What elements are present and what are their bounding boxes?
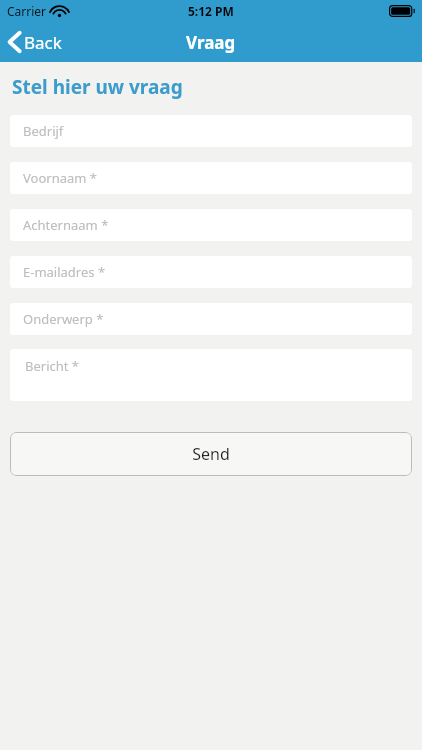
button[interactable]: Send xyxy=(10,432,412,476)
button[interactable]: Achternaam * xyxy=(10,209,412,241)
staticText: Onderwerp * xyxy=(23,310,104,328)
button[interactable]: Bericht * xyxy=(10,349,412,401)
staticText: Voornaam * xyxy=(23,169,97,187)
button[interactable]: Voornaam * xyxy=(10,162,412,194)
other: Back xyxy=(8,31,21,53)
other: Battery full xyxy=(389,5,415,17)
staticText: E-mailadres * xyxy=(23,263,106,281)
staticText: Vraag xyxy=(186,31,236,54)
staticText: Bedrijf xyxy=(23,122,64,140)
button[interactable]: Bedrijf xyxy=(10,115,412,147)
staticText: Back xyxy=(24,31,62,54)
staticText: Achternaam * xyxy=(23,216,109,234)
staticText: Send xyxy=(192,443,230,465)
staticText: Stel hier uw vraag xyxy=(12,74,183,100)
staticText: 5:12 PM xyxy=(188,3,234,19)
staticText: Bericht * xyxy=(25,357,80,375)
button[interactable]: E-mailadres * xyxy=(10,256,412,288)
staticText: Carrier xyxy=(7,3,47,19)
button[interactable]: Back xyxy=(0,22,74,62)
button[interactable]: Onderwerp * xyxy=(10,303,412,335)
